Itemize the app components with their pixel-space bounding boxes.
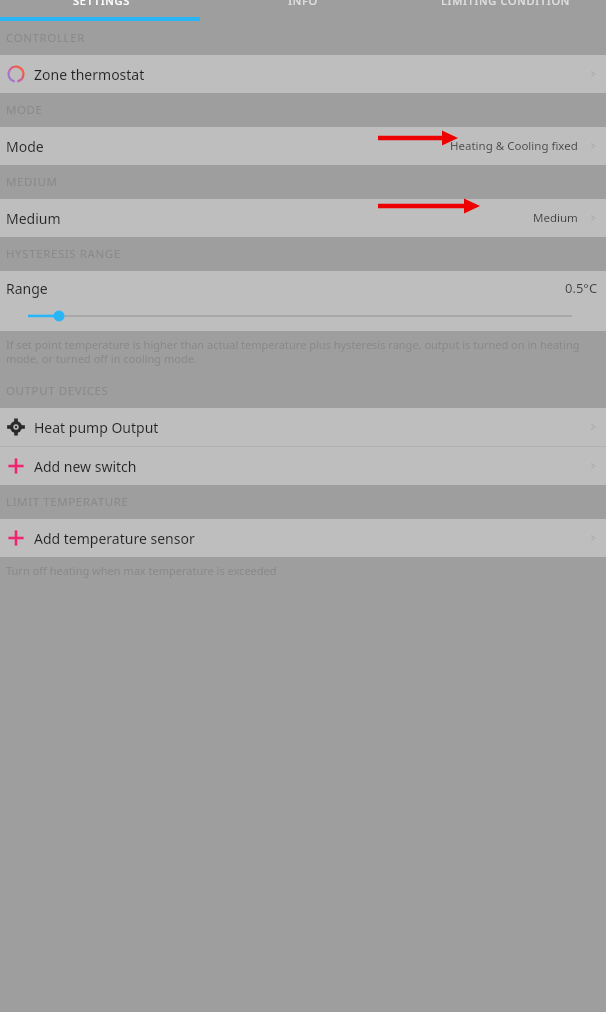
- button[interactable]: Zone thermostat: [0, 55, 606, 93]
- other: Add: [6, 456, 26, 476]
- other: Zone thermostat: [6, 64, 26, 84]
- staticText: LIMITING CONDITION: [441, 0, 570, 8]
- staticText: LIMIT TEMPERATURE: [6, 494, 129, 510]
- button[interactable]: SETTINGS: [0, 0, 202, 17]
- staticText: Turn off heating when max temperature is…: [6, 563, 277, 578]
- staticText: Zone thermostat: [34, 65, 145, 84]
- staticText: OUTPUT DEVICES: [6, 383, 109, 399]
- staticText: CONTROLLER: [6, 30, 85, 46]
- staticText: Heat pump Output: [34, 418, 159, 437]
- staticText: HYSTERESIS RANGE: [6, 246, 121, 262]
- other: Heat pump output: [6, 417, 26, 437]
- staticText: If set point temperature is higher than …: [6, 337, 596, 366]
- staticText: Medium: [6, 209, 61, 228]
- button[interactable]: Mode: [0, 127, 606, 165]
- button[interactable]: Heat pump output: [0, 408, 606, 446]
- staticText: Add temperature sensor: [34, 529, 195, 548]
- button[interactable]: Add: [0, 519, 606, 557]
- button[interactable]: Range: [0, 271, 606, 331]
- staticText: MODE: [6, 102, 43, 118]
- other: Add: [6, 528, 26, 548]
- button[interactable]: LIMITING CONDITION: [404, 0, 606, 17]
- button[interactable]: INFO: [202, 0, 404, 17]
- staticText: Add new switch: [34, 457, 137, 476]
- staticText: INFO: [288, 0, 318, 8]
- staticText: MEDIUM: [6, 174, 58, 190]
- staticText: Medium: [533, 210, 578, 226]
- button[interactable]: Medium: [0, 199, 606, 237]
- staticText: 0.5°C: [565, 279, 598, 297]
- staticText: Heating & Cooling fixed: [450, 138, 578, 154]
- staticText: Mode: [6, 137, 44, 156]
- staticText: Range: [6, 279, 48, 298]
- button[interactable]: Add: [0, 447, 606, 485]
- staticText: SETTINGS: [73, 0, 130, 8]
